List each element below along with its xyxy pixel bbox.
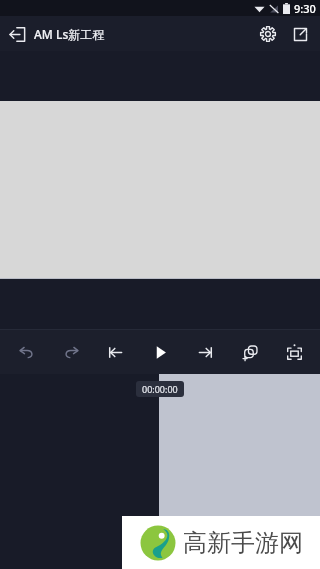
button[interactable]: Play (141, 330, 179, 374)
staticText: 9:30 (294, 1, 316, 16)
button[interactable]: Add layer (231, 330, 269, 374)
button[interactable]: Undo (7, 330, 45, 374)
staticText: AM Ls新工程 (34, 26, 105, 42)
staticText: 00:00:00 (142, 383, 178, 395)
button[interactable]: Redo (52, 330, 90, 374)
button[interactable]: Back (0, 17, 34, 51)
button[interactable]: Export (284, 18, 316, 50)
button[interactable]: Transform (275, 330, 313, 374)
button[interactable]: Skip to end (186, 330, 224, 374)
staticText: 高新手游网 (183, 528, 303, 558)
button[interactable]: Settings (252, 18, 284, 50)
button[interactable]: Skip to start (96, 330, 134, 374)
